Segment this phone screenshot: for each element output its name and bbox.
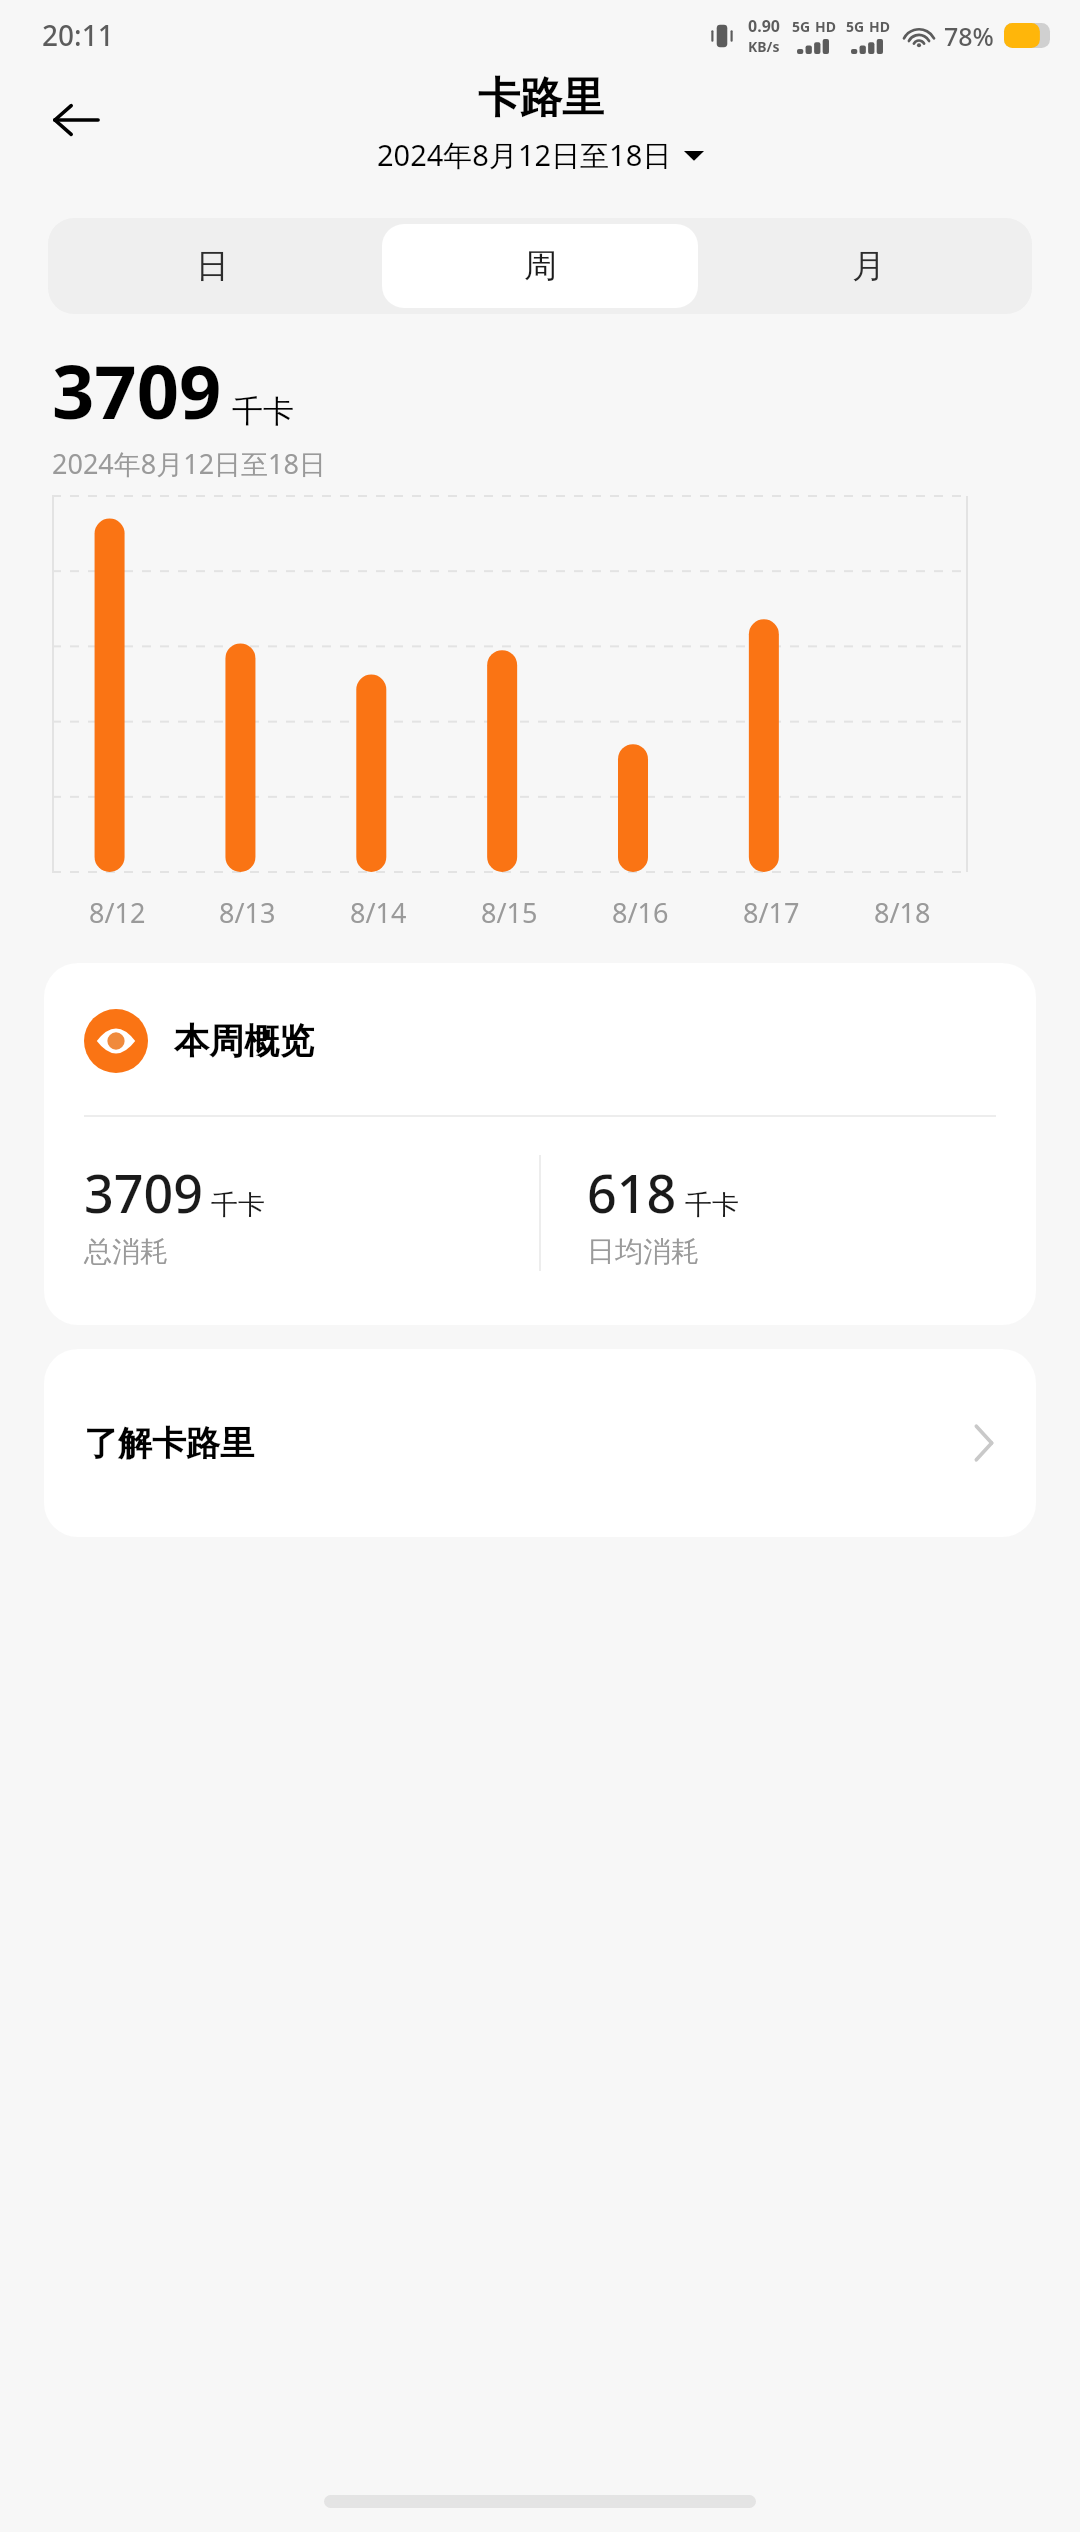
staticText: HD bbox=[815, 17, 836, 36]
staticText: 8/12 bbox=[89, 894, 146, 931]
staticText: 3709 bbox=[52, 340, 222, 441]
staticText: 20:11 bbox=[42, 16, 114, 54]
staticText: 8/16 bbox=[612, 894, 669, 931]
staticText: 总消耗 bbox=[84, 1234, 168, 1269]
button[interactable]: Back bbox=[38, 82, 114, 158]
staticText: 8/18 bbox=[874, 894, 931, 931]
staticText: 千卡 bbox=[232, 392, 294, 431]
staticText: 618 bbox=[587, 1157, 677, 1228]
staticText: 日均消耗 bbox=[587, 1234, 699, 1269]
staticText: 3709 bbox=[84, 1157, 203, 1228]
button[interactable]: 周 bbox=[382, 224, 698, 308]
staticText: 本周概览 bbox=[174, 1019, 314, 1063]
staticText: KB/s bbox=[748, 37, 780, 56]
staticText: 8/17 bbox=[743, 894, 800, 931]
button[interactable]: 2024年8月12日至18日 bbox=[369, 131, 712, 179]
staticText: 8/13 bbox=[219, 894, 276, 931]
staticText: 8/15 bbox=[481, 894, 538, 931]
staticText: 5G bbox=[792, 17, 811, 36]
staticText: 0.90 bbox=[748, 15, 780, 37]
staticText: 2024年8月12日至18日 bbox=[52, 445, 326, 482]
staticText: 8/14 bbox=[350, 894, 407, 931]
staticText: 周 bbox=[524, 245, 557, 287]
staticText: 2024年8月12日至18日 bbox=[377, 135, 672, 175]
staticText: 了解卡路里 bbox=[84, 1422, 254, 1465]
staticText: 日 bbox=[196, 245, 229, 287]
staticText: 78% bbox=[944, 19, 994, 53]
button[interactable]: 本周概览 bbox=[44, 963, 1036, 1325]
button[interactable]: 了解卡路里 bbox=[44, 1349, 1036, 1537]
staticText: 5G bbox=[846, 17, 865, 36]
staticText: 月 bbox=[852, 245, 885, 287]
button[interactable]: 日 bbox=[54, 224, 370, 308]
staticText: 千卡 bbox=[685, 1188, 739, 1222]
button[interactable]: 月 bbox=[710, 224, 1026, 308]
staticText: HD bbox=[869, 17, 890, 36]
staticText: 千卡 bbox=[211, 1188, 265, 1222]
staticText: 卡路里 bbox=[478, 72, 604, 125]
